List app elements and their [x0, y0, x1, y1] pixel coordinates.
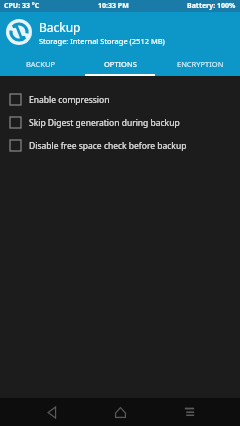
button[interactable]: Skip Digest generation during backup	[0, 111, 240, 134]
staticText: Disable free space check before backup	[29, 140, 187, 152]
button[interactable]: BACKUP	[0, 52, 80, 76]
button[interactable]: Disable free space check before backup	[0, 134, 240, 157]
staticText: Enable compression	[29, 94, 110, 106]
staticText: Storage: Internal Storage (2512 MB)	[39, 36, 165, 46]
button[interactable]: ENCRYPTION	[160, 52, 240, 76]
button[interactable]: Enable compression	[0, 88, 240, 111]
staticText: CPU: 33 °C	[4, 1, 40, 11]
button[interactable]: Home	[103, 398, 137, 426]
button[interactable]: Recent apps	[172, 398, 206, 426]
staticText: Skip Digest generation during backup	[29, 117, 180, 129]
staticText: 10:33 PM	[98, 1, 129, 11]
staticText: Battery: 100%	[187, 1, 236, 11]
staticText: Backup	[39, 19, 81, 35]
staticText: ENCRYPTION	[177, 59, 224, 69]
staticText: OPTIONS	[104, 59, 137, 69]
staticText: BACKUP	[26, 59, 55, 69]
button[interactable]: OPTIONS	[80, 52, 160, 76]
button[interactable]: Back	[35, 398, 69, 426]
other: App icon	[6, 19, 32, 45]
